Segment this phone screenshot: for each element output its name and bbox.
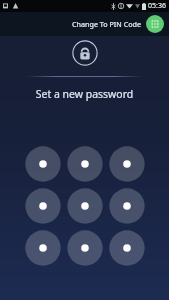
other: Change To PIN Code bbox=[146, 15, 164, 33]
button[interactable]: Pattern dot 6 bbox=[106, 185, 148, 227]
button[interactable]: Pattern dot 3 bbox=[106, 143, 148, 185]
button[interactable]: Pattern dot 4 bbox=[22, 185, 64, 227]
button[interactable]: Pattern dot 8 bbox=[64, 227, 106, 269]
button[interactable]: Pattern dot 5 bbox=[64, 185, 106, 227]
button[interactable]: Pattern dot 9 bbox=[106, 227, 148, 269]
button[interactable]: Change To PIN Code bbox=[72, 15, 164, 33]
staticText: 05:36 bbox=[148, 1, 166, 11]
staticText: Change To PIN Code bbox=[72, 19, 141, 29]
button[interactable]: Pattern dot 7 bbox=[22, 227, 64, 269]
button[interactable]: Pattern dot 2 bbox=[64, 143, 106, 185]
staticText: Set a new password bbox=[0, 87, 169, 101]
button[interactable]: Pattern dot 1 bbox=[22, 143, 64, 185]
